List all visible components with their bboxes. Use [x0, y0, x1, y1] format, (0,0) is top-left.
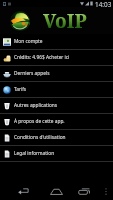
button[interactable]: Recent apps	[72, 183, 96, 200]
button[interactable]: Home	[44, 183, 68, 200]
staticText: Mon compte	[14, 38, 43, 45]
button[interactable]: Mon compte	[0, 34, 113, 49]
staticText: Crédits: 4.96$ Acheter ici	[14, 54, 70, 61]
button[interactable]: Autres applications	[0, 98, 113, 113]
button[interactable]: More options	[100, 183, 112, 200]
staticText: VoIP	[43, 8, 87, 34]
button[interactable]: Conditions d'utilisation	[0, 130, 113, 145]
staticText: Conditions d'utilisation	[14, 134, 66, 141]
button[interactable]: Back	[12, 183, 36, 200]
button[interactable]: Derniers appels	[0, 66, 113, 81]
button[interactable]: Crédits: 4.96$ Acheter ici	[0, 50, 113, 65]
button[interactable]: Tarifs	[0, 82, 113, 97]
staticText: Tarifs	[14, 86, 27, 93]
button[interactable]: À propos de cette app.	[0, 114, 113, 129]
staticText: Legal information	[14, 150, 55, 157]
staticText: Autres applications	[14, 102, 58, 109]
staticText: Derniers appels	[14, 70, 50, 77]
staticText: 14:03	[95, 0, 112, 7]
staticText: À propos de cette app.	[14, 118, 65, 125]
button[interactable]: Legal information	[0, 146, 113, 161]
